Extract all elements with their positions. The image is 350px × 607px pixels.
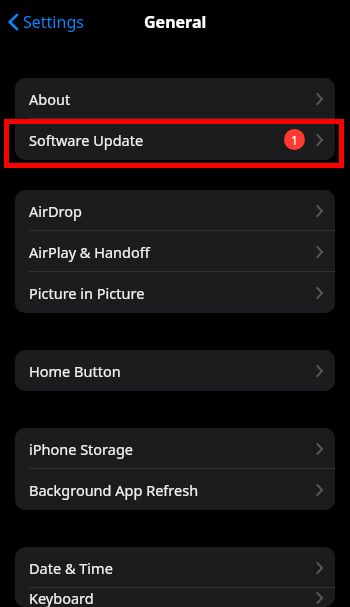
staticText: Keyboard [29, 588, 94, 607]
staticText: Home Button [29, 361, 121, 381]
button[interactable]: Picture in Picture [15, 272, 335, 313]
staticText: 1 [291, 132, 298, 148]
staticText: About [29, 89, 71, 109]
staticText: Picture in Picture [29, 283, 145, 303]
staticText: AirPlay & Handoff [29, 242, 150, 262]
staticText: AirDrop [29, 201, 82, 221]
button[interactable]: Keyboard [15, 588, 335, 607]
staticText: General [144, 11, 207, 33]
button[interactable]: Date & Time [15, 547, 335, 588]
staticText: Software Update [29, 130, 144, 150]
staticText: Background App Refresh [29, 480, 199, 500]
staticText: iPhone Storage [29, 439, 134, 459]
button[interactable]: AirPlay & Handoff [15, 231, 335, 272]
button[interactable]: Home Button [15, 350, 335, 391]
button[interactable]: Software Update [15, 119, 335, 160]
button[interactable]: iPhone Storage [15, 428, 335, 469]
button[interactable]: Back to Settings [5, 6, 87, 38]
button[interactable]: Background App Refresh [15, 469, 335, 510]
button[interactable]: AirDrop [15, 190, 335, 231]
staticText: Settings [23, 11, 84, 33]
staticText: Date & Time [29, 558, 113, 578]
button[interactable]: About [15, 78, 335, 119]
